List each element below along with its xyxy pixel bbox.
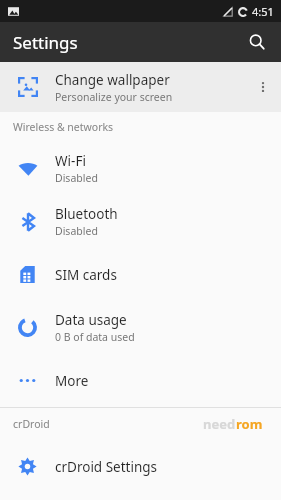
staticText: Disabled — [55, 224, 98, 238]
staticText: 4:51 — [252, 4, 274, 19]
button[interactable]: crDroid Settings — [0, 440, 281, 493]
staticText: Settings — [13, 31, 78, 54]
staticText: Wi-Fi — [55, 152, 86, 170]
staticText: crDroid — [13, 417, 50, 431]
staticText: SIM cards — [55, 266, 117, 284]
button[interactable]: Search — [241, 26, 273, 58]
staticText: crDroid Settings — [55, 458, 158, 476]
button[interactable]: Data usage — [0, 301, 281, 354]
staticText: Data usage — [55, 311, 127, 329]
staticText: Wireless & networks — [13, 120, 114, 134]
staticText: rom — [236, 415, 263, 433]
button[interactable]: More — [0, 354, 281, 407]
button[interactable]: Change wallpaper — [0, 62, 281, 112]
staticText: More — [55, 372, 89, 390]
button[interactable]: Wi-Fi — [0, 142, 281, 195]
staticText: need — [203, 415, 236, 433]
button[interactable]: More options — [245, 69, 281, 105]
staticText: Change wallpaper — [55, 71, 170, 89]
staticText: Bluetooth — [55, 205, 118, 223]
button[interactable]: Bluetooth — [0, 195, 281, 248]
staticText: Personalize your screen — [55, 90, 173, 104]
staticText: Disabled — [55, 171, 98, 185]
button[interactable]: SIM cards — [0, 248, 281, 301]
staticText: 0 B of data used — [55, 330, 135, 344]
